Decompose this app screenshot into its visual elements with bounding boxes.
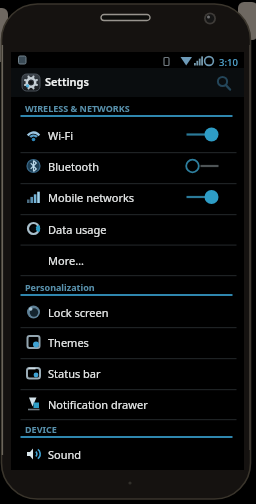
staticText: Settings: [45, 74, 89, 89]
staticText: Status bar: [48, 366, 101, 381]
staticText: Data usage: [48, 222, 107, 237]
staticText: More…: [48, 253, 84, 268]
staticText: Lock screen: [48, 305, 109, 320]
staticText: Sound: [48, 447, 82, 462]
staticText: 3:10: [219, 56, 238, 69]
staticText: Mobile networks: [48, 190, 135, 205]
staticText: Wi-Fi: [48, 128, 74, 143]
staticText: DEVICE: [25, 423, 57, 435]
staticText: Personalization: [25, 281, 95, 293]
staticText: Bluetooth: [48, 159, 100, 174]
staticText: WIRELESS & NETWORKS: [25, 102, 130, 114]
staticText: Notification drawer: [48, 397, 148, 412]
staticText: Themes: [48, 335, 89, 350]
